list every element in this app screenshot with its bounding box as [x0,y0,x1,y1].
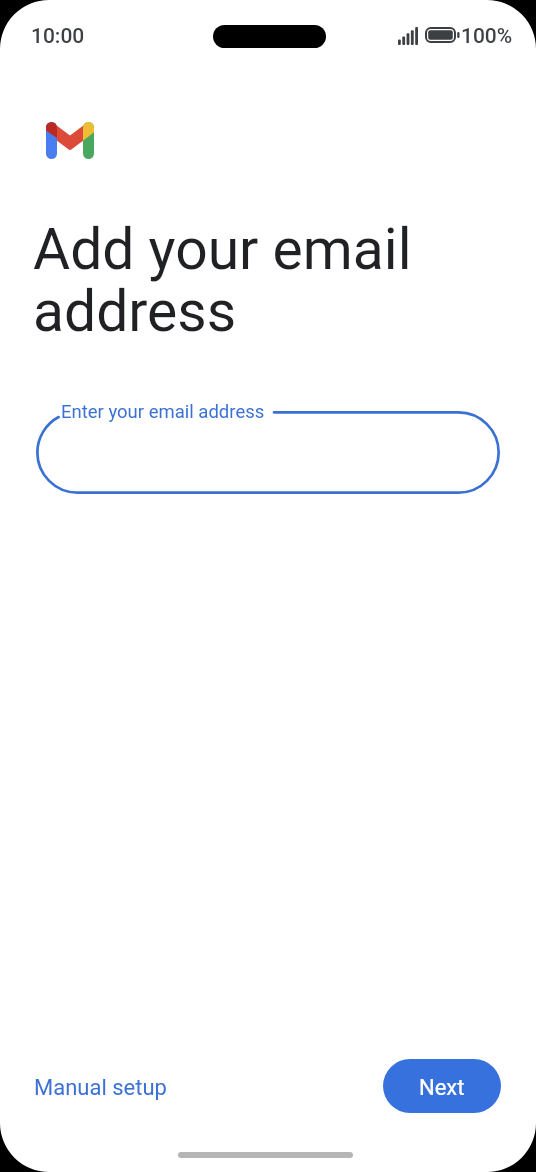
button[interactable]: Manual setup [34,1075,167,1101]
staticText: Manual setup [34,1075,167,1101]
staticText: Next [419,1075,465,1101]
staticText: Enter your email address [61,401,265,423]
button[interactable]: Next [383,1059,501,1113]
staticText: 100% [461,24,513,49]
staticText: Add your email address [33,216,412,345]
staticText: 10:00 [31,24,85,49]
